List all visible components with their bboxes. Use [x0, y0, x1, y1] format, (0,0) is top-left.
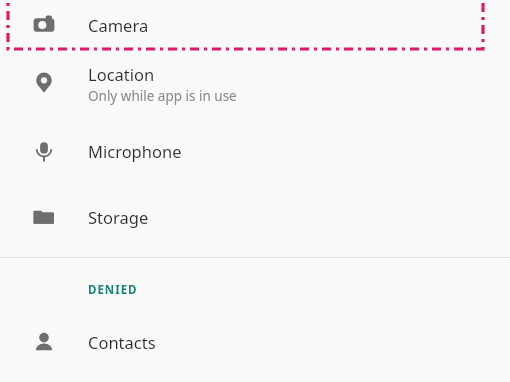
staticText: Camera: [88, 14, 149, 36]
button[interactable]: Location: [0, 50, 510, 118]
button[interactable]: Camera: [0, 0, 510, 50]
staticText: Microphone: [88, 140, 182, 162]
staticText: Only while app is in use: [88, 87, 237, 105]
staticText: Contacts: [88, 331, 156, 353]
button[interactable]: Storage: [0, 184, 510, 250]
staticText: DENIED: [88, 282, 138, 298]
staticText: Location: [88, 63, 155, 85]
staticText: Storage: [88, 206, 149, 228]
button[interactable]: Contacts: [0, 314, 510, 370]
button[interactable]: Microphone: [0, 118, 510, 184]
